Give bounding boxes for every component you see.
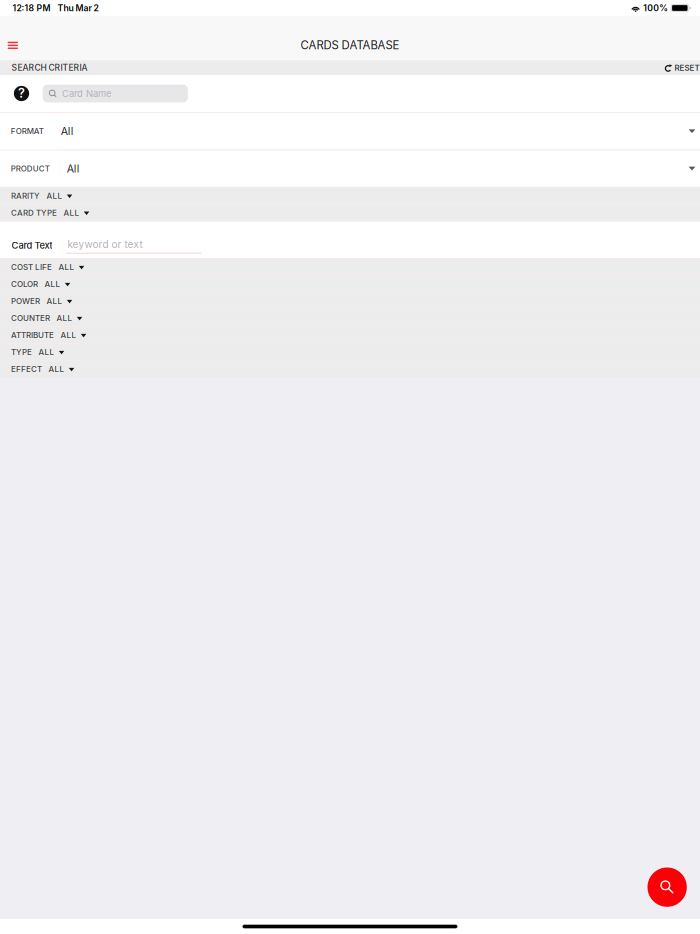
button[interactable]: RARITY <box>0 188 700 204</box>
staticText: PRODUCT <box>11 164 50 173</box>
staticText: All <box>61 125 74 138</box>
button[interactable]: COLOR <box>0 276 700 292</box>
button[interactable]: POWER <box>0 293 700 309</box>
staticText: COUNTER <box>11 313 50 323</box>
staticText: ALL <box>45 279 61 289</box>
staticText: Thu Mar 2 <box>58 3 99 13</box>
staticText: ALL <box>39 347 55 357</box>
staticText: POWER <box>11 296 40 306</box>
staticText: SEARCH CRITERIA <box>11 63 87 73</box>
staticText: All <box>67 162 80 175</box>
button[interactable]: keyword or text <box>66 226 202 254</box>
button[interactable]: CARD TYPE <box>0 205 700 221</box>
button[interactable]: FORMAT <box>0 113 700 149</box>
staticText: EFFECT <box>11 364 42 374</box>
staticText: FORMAT <box>11 126 44 136</box>
staticText: ? <box>18 86 25 101</box>
staticText: ALL <box>57 313 73 323</box>
staticText: COST LIFE <box>11 262 52 272</box>
staticText: ALL <box>47 191 63 201</box>
staticText: ALL <box>49 364 65 374</box>
button[interactable]: COST LIFE <box>0 259 700 275</box>
staticText: RESET <box>674 63 699 73</box>
button[interactable]: COUNTER <box>0 310 700 326</box>
staticText: 12:18 PM <box>13 3 51 13</box>
staticText: Card Name <box>62 88 111 99</box>
button[interactable]: PRODUCT <box>0 150 700 187</box>
staticText: CARD TYPE <box>11 208 57 218</box>
staticText: ALL <box>64 208 80 218</box>
button[interactable]: RESET <box>664 60 699 75</box>
button[interactable]: TYPE <box>0 344 700 360</box>
button[interactable]: Menu <box>0 16 28 60</box>
staticText: COLOR <box>11 279 38 289</box>
staticText: RARITY <box>11 191 40 201</box>
staticText: keyword or text <box>67 238 142 250</box>
staticText: ATTRIBUTE <box>11 330 54 340</box>
button[interactable]: Search <box>647 867 687 907</box>
staticText: Card Text <box>11 240 52 251</box>
staticText: ALL <box>61 330 77 340</box>
staticText: ALL <box>47 296 63 306</box>
staticText: CARDS DATABASE <box>300 38 399 52</box>
button[interactable]: Help <box>9 81 34 106</box>
button[interactable]: Card Name <box>43 84 188 102</box>
button[interactable]: ATTRIBUTE <box>0 327 700 343</box>
staticText: TYPE <box>11 347 32 357</box>
button[interactable]: EFFECT <box>0 361 700 377</box>
staticText: ALL <box>59 262 75 272</box>
staticText: 100% <box>643 3 668 13</box>
